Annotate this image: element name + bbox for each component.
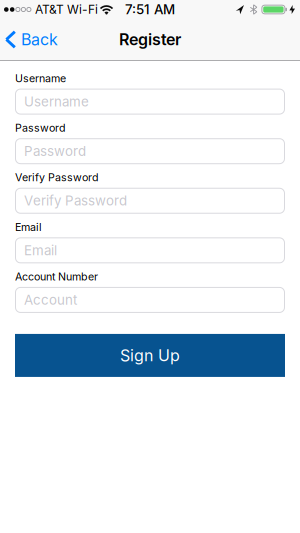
staticText: Username: [24, 94, 89, 109]
staticText: Email: [24, 242, 57, 258]
staticText: Email: [15, 221, 42, 233]
staticText: Password: [15, 122, 66, 134]
staticText: Verify Password: [15, 171, 99, 184]
staticText: 7:51 AM: [125, 2, 175, 17]
staticText: Account Number: [15, 270, 98, 283]
staticText: Back: [21, 30, 58, 49]
button[interactable]: Account: [15, 287, 285, 313]
button[interactable]: Username: [15, 89, 285, 115]
button[interactable]: Password: [15, 138, 285, 164]
button[interactable]: Verify Password: [15, 188, 285, 214]
staticText: Account: [24, 292, 77, 308]
staticText: Verify Password: [24, 193, 127, 209]
staticText: Username: [15, 72, 66, 85]
button[interactable]: Sign Up: [15, 334, 285, 377]
button[interactable]: Back: [0, 30, 58, 49]
staticText: Register: [119, 30, 181, 49]
staticText: Password: [24, 143, 86, 159]
button[interactable]: Email: [15, 237, 285, 263]
staticText: AT&T Wi-Fi: [35, 2, 98, 17]
staticText: Sign Up: [120, 346, 180, 365]
